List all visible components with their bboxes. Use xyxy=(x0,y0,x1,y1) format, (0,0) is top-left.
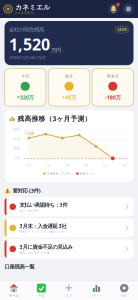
button[interactable]: 設定 xyxy=(110,281,138,300)
staticText: 1000 xyxy=(12,147,20,151)
staticText: 合計 180万円 xyxy=(19,209,38,212)
staticText: 1月 xyxy=(26,164,31,167)
staticText: レポート xyxy=(91,294,103,297)
button[interactable]: レポート xyxy=(83,281,110,300)
staticText: カネミエル xyxy=(15,3,50,11)
staticText: 支払い承認待ち：3件 xyxy=(19,201,67,208)
staticText: +45万 xyxy=(62,94,76,101)
staticText: 3月 xyxy=(65,164,70,167)
staticText: 今月 xyxy=(21,74,29,79)
staticText: 2025年12月24日 現在 xyxy=(9,55,46,60)
staticText: 危険ライン xyxy=(80,172,95,175)
staticText: 入力 xyxy=(66,294,72,297)
staticText: 残高推移（3ヶ月予測） xyxy=(18,114,92,123)
staticText: 設定 xyxy=(121,294,127,297)
staticText: K A N E M I E L xyxy=(15,11,34,15)
staticText: 口座残高一覧 xyxy=(4,264,34,270)
staticText: 1500 xyxy=(12,138,20,141)
button[interactable]: 支払い承認待ち：3件 xyxy=(4,197,133,216)
staticText: 承認 xyxy=(38,294,44,297)
staticText: 万円 xyxy=(51,47,61,53)
staticText: 来月 xyxy=(65,74,73,79)
button[interactable]: 3月末：入金遅延 3社 xyxy=(4,218,133,237)
button[interactable]: 来月 xyxy=(48,69,90,106)
button[interactable]: Account xyxy=(122,3,134,15)
staticText: LIVE xyxy=(117,27,126,32)
staticText: 500 xyxy=(14,156,20,160)
staticText: 要対応 (3件) xyxy=(13,187,41,194)
staticText: 5月 xyxy=(103,164,108,167)
staticText: 3月末：入金遅延 3社 xyxy=(19,222,66,229)
staticText: 予測残高（3ヶ月） xyxy=(47,172,73,175)
staticText: 対象クライアントをご確認ください xyxy=(19,230,67,233)
staticText: 1,520 xyxy=(9,34,50,55)
button[interactable]: ホーム xyxy=(0,281,28,300)
staticText: 再来月 xyxy=(107,74,119,79)
staticText: -180万 xyxy=(105,94,121,101)
button[interactable]: Notifications xyxy=(107,3,119,15)
button[interactable]: 今月 xyxy=(4,69,46,106)
staticText: 会社の現在残高 xyxy=(9,26,44,33)
staticText: 3月に資金不足の見込み xyxy=(19,243,72,250)
staticText: 4月 xyxy=(84,164,89,167)
button[interactable]: 入力 xyxy=(55,281,83,300)
staticText: +320万 xyxy=(17,94,34,101)
staticText: 2月 xyxy=(46,164,51,167)
staticText: 残高 -180万円 の予測 xyxy=(19,251,49,254)
staticText: 6月 xyxy=(122,164,127,167)
button[interactable]: 再来月 xyxy=(92,69,133,106)
button[interactable]: 3月に資金不足の見込み xyxy=(4,239,133,258)
staticText: 2000 xyxy=(12,128,20,132)
staticText: 1,520 xyxy=(25,132,34,136)
button[interactable]: 承認 xyxy=(28,281,55,300)
staticText: ホーム xyxy=(9,294,18,297)
